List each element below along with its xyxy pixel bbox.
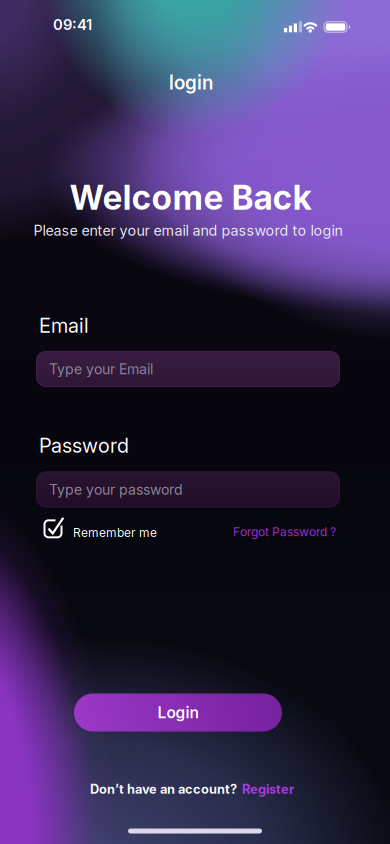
- staticText: Register: [242, 781, 294, 796]
- staticText: login: [169, 71, 213, 94]
- button[interactable]: Forgot Password ?: [233, 521, 336, 535]
- button[interactable]: Don’t have an account?: [90, 781, 294, 796]
- staticText: Remember me: [73, 526, 157, 540]
- staticText: Type your Email: [49, 361, 153, 377]
- staticText: Don’t have an account?: [90, 781, 237, 796]
- button[interactable]: Remember me: [41, 516, 157, 540]
- staticText: 09:41: [53, 16, 92, 33]
- staticText: Login: [157, 703, 198, 722]
- staticText: Email: [39, 314, 89, 337]
- button[interactable]: Type your Email: [36, 351, 340, 387]
- staticText: Password: [39, 434, 129, 457]
- staticText: Please enter your email and password to …: [33, 222, 342, 239]
- button[interactable]: Login: [74, 693, 282, 731]
- staticText: Type your password: [49, 481, 183, 498]
- staticText: Forgot Password ?: [233, 525, 336, 539]
- button[interactable]: Type your password: [36, 471, 340, 507]
- staticText: Welcome Back: [69, 178, 311, 217]
